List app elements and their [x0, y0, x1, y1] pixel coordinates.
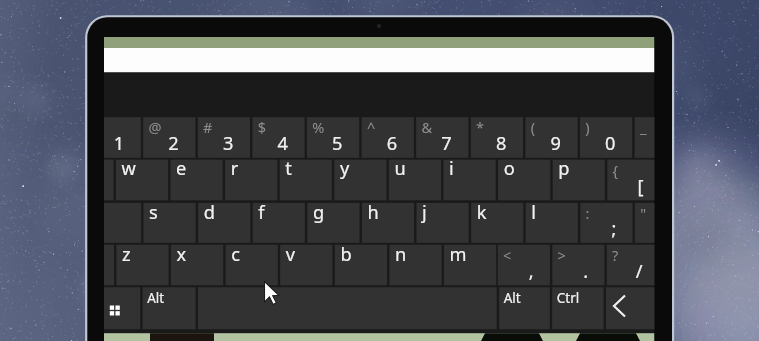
button[interactable]: [0, 0, 759, 341]
